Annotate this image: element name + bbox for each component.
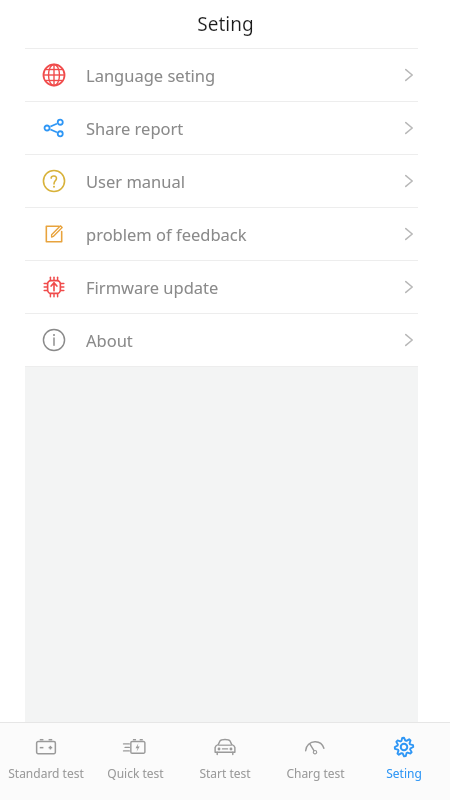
staticText: User manual: [86, 170, 185, 192]
button[interactable]: About: [0, 314, 450, 366]
staticText: Share report: [86, 117, 184, 139]
staticText: About: [86, 329, 133, 351]
button[interactable]: Language seting: [0, 49, 450, 101]
button[interactable]: problem of feedback: [0, 208, 450, 260]
staticText: Standard test: [8, 765, 84, 781]
button[interactable]: User manual: [0, 155, 450, 207]
staticText: problem of feedback: [86, 223, 247, 245]
button[interactable]: Quick test: [91, 723, 179, 781]
staticText: Seting: [197, 11, 254, 37]
staticText: Seting: [386, 765, 422, 781]
button[interactable]: Share report: [0, 102, 450, 154]
staticText: Language seting: [86, 64, 216, 86]
button[interactable]: Start test: [181, 723, 269, 781]
button[interactable]: Firmware update: [0, 261, 450, 313]
staticText: Quick test: [107, 765, 164, 781]
staticText: Start test: [199, 765, 251, 781]
staticText: Charg test: [286, 765, 345, 781]
button[interactable]: Standard test: [2, 723, 90, 781]
staticText: Firmware update: [86, 276, 219, 298]
button[interactable]: Charg test: [271, 723, 359, 781]
button[interactable]: Seting: [360, 723, 448, 781]
